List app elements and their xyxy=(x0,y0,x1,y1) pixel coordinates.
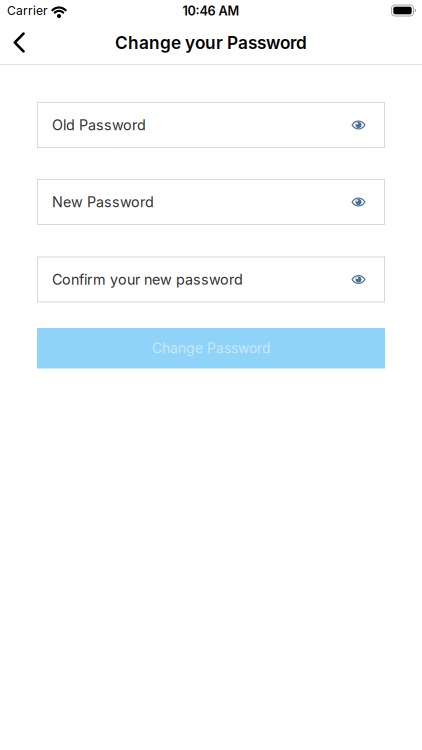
button[interactable]: Confirm your new password xyxy=(37,256,385,302)
staticText: Carrier xyxy=(7,3,48,18)
staticText: Change Password xyxy=(152,340,270,357)
staticText: New Password xyxy=(52,193,154,211)
staticText: 10:46 AM xyxy=(182,3,239,19)
button[interactable]: Old Password xyxy=(37,102,385,148)
button[interactable] xyxy=(0,25,39,65)
staticText: Old Password xyxy=(52,116,146,134)
staticText: Change your Password xyxy=(115,32,307,53)
staticText: Confirm your new password xyxy=(52,271,243,288)
button[interactable]: Change Password xyxy=(37,328,385,368)
button[interactable]: New Password xyxy=(37,179,385,225)
